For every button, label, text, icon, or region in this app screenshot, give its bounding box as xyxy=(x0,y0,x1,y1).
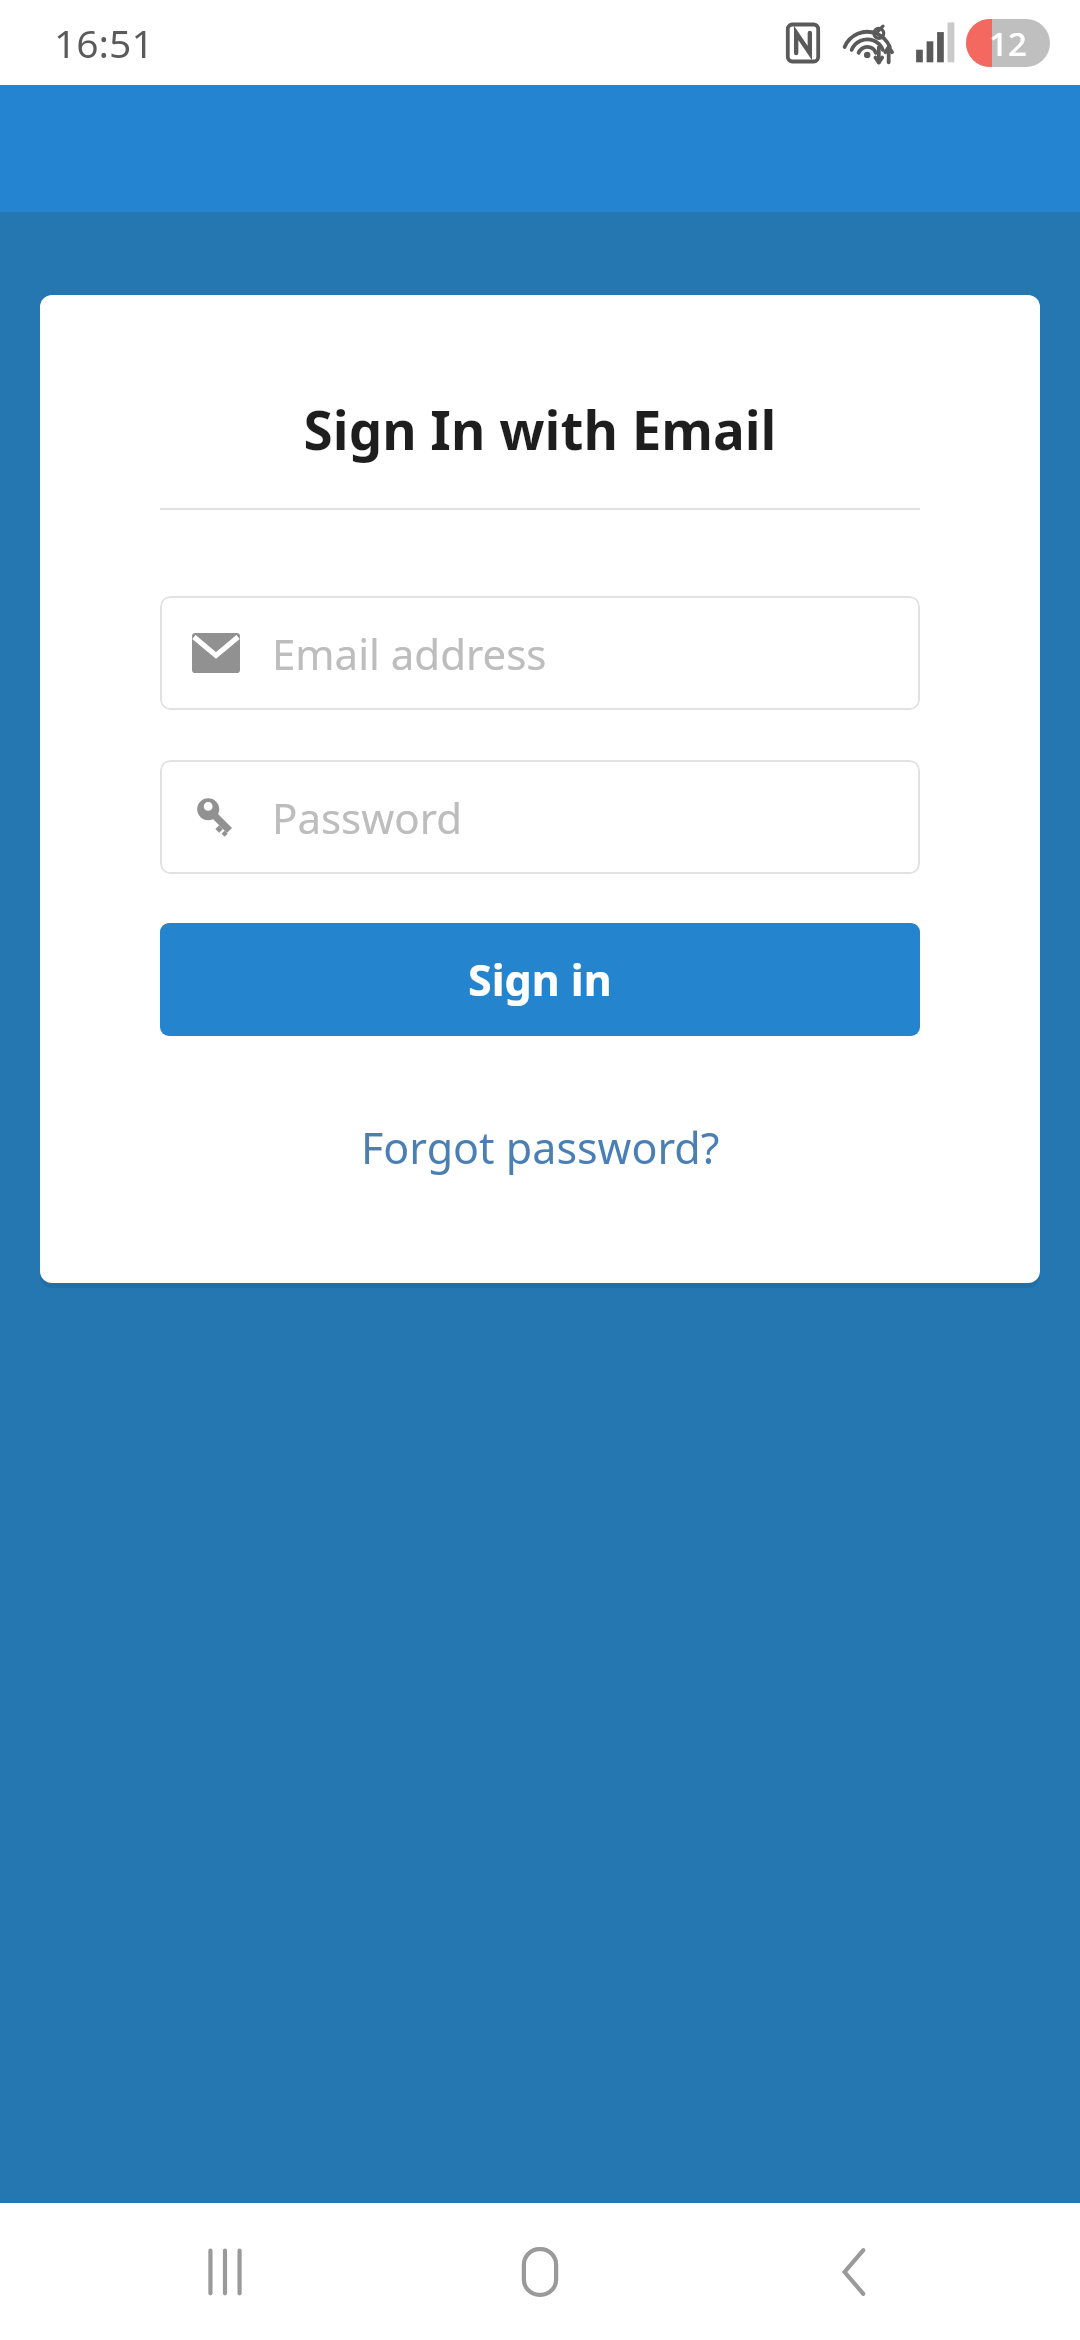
staticText: 12 xyxy=(989,21,1027,66)
staticText: Password xyxy=(272,789,462,846)
button[interactable]: Recent apps xyxy=(135,2203,315,2340)
staticText: Forgot password? xyxy=(361,1118,720,1177)
staticText: Sign in xyxy=(468,950,612,1009)
button[interactable]: Email address xyxy=(160,596,920,710)
staticText: Email address xyxy=(272,625,547,682)
button[interactable]: Password xyxy=(160,760,920,874)
button[interactable]: Sign in xyxy=(160,923,920,1036)
staticText: 16:51 xyxy=(54,16,154,69)
button[interactable]: Forgot password? xyxy=(160,1111,920,1183)
button[interactable]: Home xyxy=(450,2203,630,2340)
staticText: Sign In with Email xyxy=(40,393,1040,465)
button[interactable]: Back xyxy=(765,2203,945,2340)
